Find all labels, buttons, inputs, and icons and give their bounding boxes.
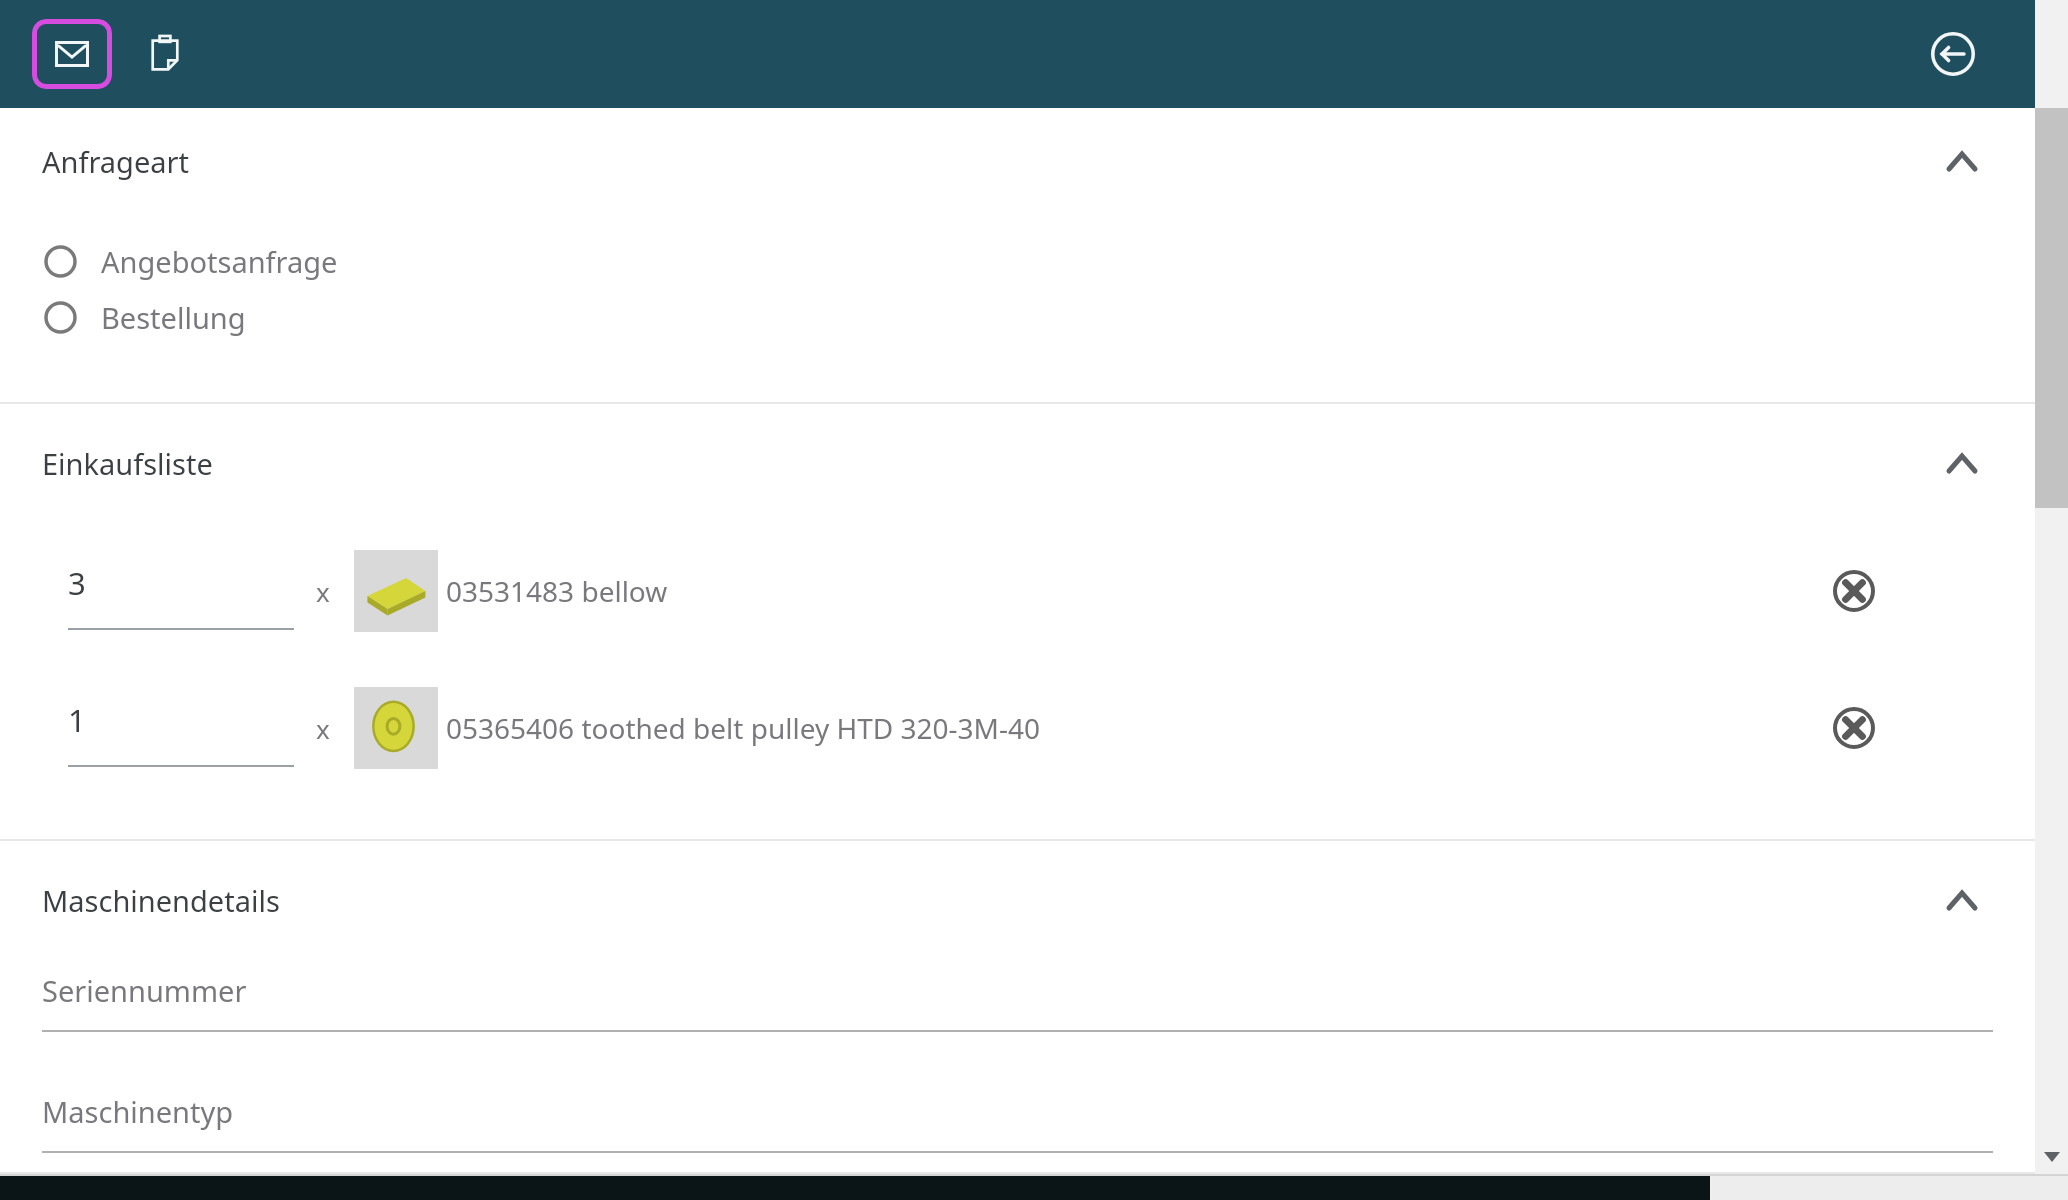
staticText: Anfrageart xyxy=(42,142,190,181)
staticText: x xyxy=(316,711,330,746)
staticText: Angebotsanfrage xyxy=(101,242,338,281)
button[interactable]: Remove item xyxy=(1825,562,1883,620)
button[interactable]: Scroll down xyxy=(2035,1140,2068,1174)
staticText: 1 xyxy=(68,699,86,741)
button[interactable]: Bestellung xyxy=(0,290,2035,344)
staticText: 03531483 bellow xyxy=(446,572,668,610)
button[interactable]: Anfrageart xyxy=(0,138,2035,184)
button[interactable]: 3 xyxy=(0,536,2035,646)
staticText: Maschinendetails xyxy=(42,881,280,920)
button[interactable]: Scroll horizontally xyxy=(0,1174,1710,1200)
button[interactable]: Email request xyxy=(32,19,112,89)
button[interactable]: Clipboard xyxy=(134,19,196,89)
staticText: x xyxy=(316,574,330,609)
button[interactable]: Einkaufsliste xyxy=(0,440,2035,486)
button[interactable]: Angebotsanfrage xyxy=(0,234,2035,288)
button[interactable]: Maschinentyp xyxy=(42,1092,1993,1153)
button[interactable]: Maschinendetails xyxy=(0,877,2035,923)
button[interactable]: Seriennummer xyxy=(42,971,1993,1032)
staticText: Einkaufsliste xyxy=(42,444,213,483)
button[interactable]: 1 xyxy=(0,673,2035,783)
button[interactable]: Remove item xyxy=(1825,699,1883,757)
staticText: 3 xyxy=(68,562,86,604)
staticText: 05365406 toothed belt pulley HTD 320-3M-… xyxy=(446,709,1041,747)
button[interactable]: Back xyxy=(1921,22,1985,86)
staticText: Seriennummer xyxy=(42,971,247,1010)
staticText: Bestellung xyxy=(101,298,246,337)
staticText: Maschinentyp xyxy=(42,1092,234,1131)
